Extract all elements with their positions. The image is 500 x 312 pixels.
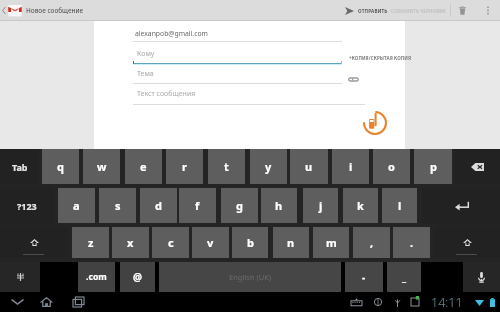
button[interactable]: z [72,227,109,258]
staticText: alexanpob@gmail.com [135,29,208,38]
staticText: ОТПРАВИТЬ [358,8,388,14]
staticText: Текст сообщения [137,89,196,99]
staticText: j [319,198,323,213]
staticText: n [287,235,295,250]
staticText: СОХРАНИТЬ ЧЕРНОВИК [391,8,446,14]
button[interactable]: . [393,227,430,258]
button[interactable]: g [221,188,258,223]
button[interactable]: y [250,149,287,184]
button[interactable]: Tab [0,149,39,184]
staticText: Новое сообщение [26,6,84,15]
button[interactable]: i [332,149,369,184]
staticText: . [410,235,414,250]
button[interactable]: b [232,227,268,258]
staticText: b [247,235,254,250]
button[interactable]: Discard [452,0,473,21]
button[interactable]: q [42,149,79,184]
button[interactable]: СОХРАНИТЬ ЧЕРНОВИК [388,0,448,21]
staticText: +КОПИЯ/СКРЫТАЯ КОПИЯ [349,55,412,61]
staticText: d [155,198,162,213]
staticText: x [127,235,134,250]
button[interactable]: Voice message [363,111,387,135]
button[interactable]: r [166,149,203,184]
staticText: q [57,159,64,174]
staticText: s [115,198,121,213]
staticText: l [398,198,402,213]
staticText: @ [133,270,142,284]
button[interactable]: m [313,227,349,258]
staticText: 14:11 [431,294,463,311]
staticText: z [88,235,94,250]
staticText: English (UK) [229,272,272,282]
staticText: Тема [137,69,154,79]
button[interactable]: u [290,149,328,184]
button[interactable]: +КОПИЯ/СКРЫТАЯ КОПИЯ [349,55,412,61]
staticText: c [168,235,174,250]
staticText: r [182,159,187,174]
button[interactable]: p [414,149,452,184]
button[interactable]: j [303,188,338,223]
button[interactable]: v [192,227,229,258]
staticText: o [388,159,395,174]
button[interactable]: s [99,188,136,223]
staticText: w [97,159,107,174]
button[interactable]: Attach file [348,77,359,82]
staticText: , [370,235,374,250]
button[interactable]: x [112,227,149,258]
button[interactable]: Home [37,292,55,312]
staticText: f [195,198,200,213]
button[interactable]: e [125,149,162,184]
button[interactable]: o [373,149,410,184]
button[interactable]: n [273,227,309,258]
button[interactable]: .com [78,262,115,292]
staticText: p [430,159,437,174]
button[interactable]: enter [422,188,500,223]
button[interactable]: _ [387,262,421,292]
button[interactable]: More options [477,0,498,21]
staticText: u [305,159,313,174]
button[interactable]: Recent apps [69,292,87,312]
staticText: ?123 [17,200,37,212]
staticText: h [275,198,283,213]
button[interactable]: Navigate up [0,0,26,21]
staticText: Кому [137,49,155,59]
button[interactable]: Back [8,292,26,312]
staticText: .com [86,271,107,283]
button[interactable]: keyboard settings [0,262,40,292]
staticText: i [349,159,353,174]
button[interactable]: c [152,227,189,258]
button[interactable]: @ [120,262,155,292]
button[interactable]: voice input [463,262,500,292]
button[interactable]: h [261,188,297,223]
button[interactable]: t [208,149,245,184]
staticText: v [207,235,214,250]
staticText: - [362,270,366,284]
button[interactable]: shift [434,227,500,258]
button[interactable]: ОТПРАВИТЬ [340,0,388,21]
button[interactable]: d [140,188,177,223]
button[interactable]: a [58,188,95,223]
staticText: e [140,159,147,174]
staticText: m [326,235,337,250]
staticText: a [73,198,80,213]
button[interactable]: - [345,262,383,292]
button[interactable]: ?123 [0,188,54,223]
staticText: t [224,159,229,174]
button[interactable]: backspace [455,149,500,184]
staticText: Tab [12,161,28,173]
staticText: y [265,159,272,174]
button[interactable]: , [353,227,390,258]
staticText: k [357,198,364,213]
button[interactable]: f [179,188,216,223]
staticText: _ [402,270,407,284]
staticText: g [236,198,243,213]
button[interactable]: shift [0,227,68,258]
button[interactable]: w [83,149,120,184]
button[interactable]: l [382,188,417,223]
button[interactable]: k [343,188,378,223]
